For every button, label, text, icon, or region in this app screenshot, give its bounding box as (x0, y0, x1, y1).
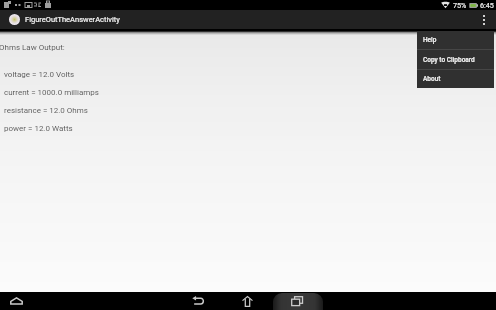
staticText: 75% (453, 1, 467, 9)
button[interactable]: Recent apps (287, 292, 307, 310)
button[interactable]: Up (6, 292, 26, 310)
button[interactable]: About (417, 70, 494, 88)
staticText: power = 12.0 Watts (4, 124, 73, 133)
staticText: Copy to Clipboard (423, 56, 475, 64)
staticText: FigureOutTheAnswerActivity (25, 15, 120, 24)
button[interactable]: Home (237, 292, 257, 310)
button[interactable]: Copy to Clipboard (417, 50, 494, 69)
button[interactable]: More options (472, 10, 496, 29)
staticText: 6:45 (480, 1, 494, 9)
staticText: Help (423, 36, 437, 44)
staticText: Ohms Law Output: (0, 43, 65, 52)
button[interactable]: Back (188, 292, 208, 310)
staticText: resistance = 12.0 Ohms (4, 106, 88, 115)
button[interactable]: Help (417, 31, 494, 49)
staticText: current = 1000.0 milliamps (4, 88, 99, 97)
staticText: About (423, 75, 441, 83)
staticText: voltage = 12.0 Volts (4, 70, 75, 79)
